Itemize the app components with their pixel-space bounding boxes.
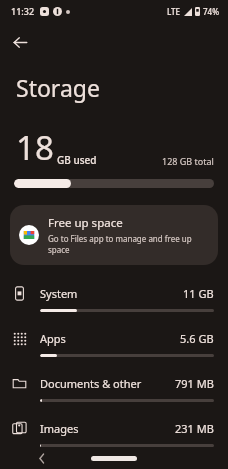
staticText: 74% (203, 6, 219, 17)
staticText: System (40, 286, 78, 301)
staticText: Images (40, 421, 79, 436)
button[interactable]: Free up space (10, 205, 218, 265)
staticText: Free up space (48, 215, 123, 231)
staticText: 128 GB total (162, 155, 214, 167)
button[interactable]: Videos (0, 458, 228, 469)
staticText: 11:32 (11, 5, 35, 17)
button[interactable]: System (0, 278, 228, 323)
staticText: 5.6 GB (180, 331, 214, 346)
button[interactable]: Apps (0, 323, 228, 368)
staticText: 231 MB (175, 421, 214, 436)
button[interactable]: Images (0, 413, 228, 458)
staticText: GB used (57, 153, 97, 167)
staticText: Videos (40, 458, 75, 469)
staticText: 18 (16, 125, 54, 170)
staticText: Documents & other (40, 376, 142, 391)
staticText: 11 GB (183, 286, 214, 301)
staticText: 791 MB (175, 376, 214, 391)
staticText: LTE (167, 6, 181, 17)
button[interactable]: Home (91, 456, 137, 461)
staticText: Apps (40, 331, 66, 346)
button[interactable]: Documents & other (0, 368, 228, 413)
staticText: Go to Files app to manage and free up sp… (48, 233, 209, 255)
staticText: Storage (16, 72, 100, 103)
button[interactable]: Back (6, 28, 34, 56)
